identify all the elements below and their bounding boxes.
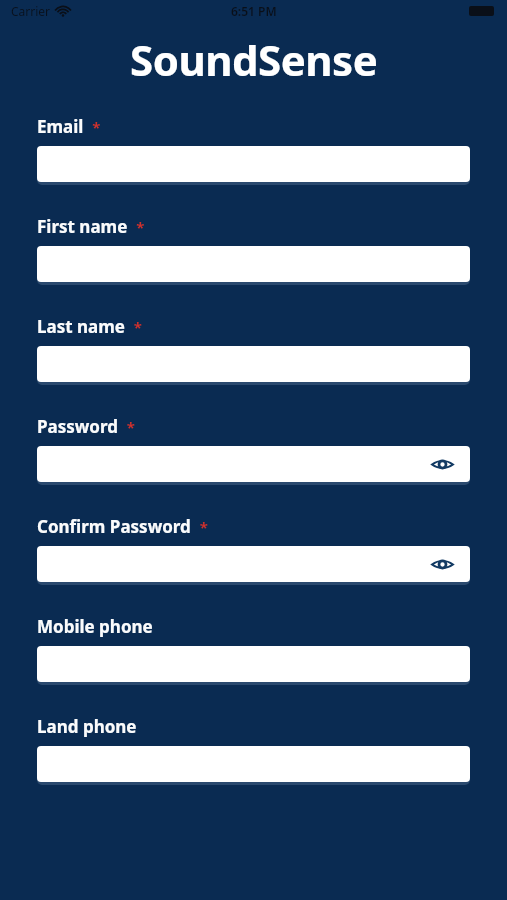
button[interactable] bbox=[37, 646, 470, 682]
button[interactable]: Show password bbox=[428, 450, 456, 478]
staticText: Email * bbox=[37, 115, 101, 138]
staticText: Confirm Password * bbox=[37, 515, 208, 538]
staticText: Land phone bbox=[37, 715, 137, 738]
staticText: Last name * bbox=[37, 315, 142, 338]
staticText: First name * bbox=[37, 215, 145, 238]
staticText: Carrier bbox=[11, 3, 51, 19]
button[interactable] bbox=[37, 346, 470, 382]
staticText: SoundSense bbox=[130, 31, 378, 88]
button[interactable] bbox=[37, 746, 470, 782]
button[interactable]: Show password bbox=[428, 550, 456, 578]
button[interactable] bbox=[37, 246, 470, 282]
staticText: Password * bbox=[37, 415, 135, 438]
button[interactable]: Show password bbox=[37, 446, 470, 482]
staticText: 6:51 PM bbox=[231, 3, 277, 19]
button[interactable]: Show password bbox=[37, 546, 470, 582]
staticText: Mobile phone bbox=[37, 615, 153, 638]
button[interactable] bbox=[37, 146, 470, 182]
